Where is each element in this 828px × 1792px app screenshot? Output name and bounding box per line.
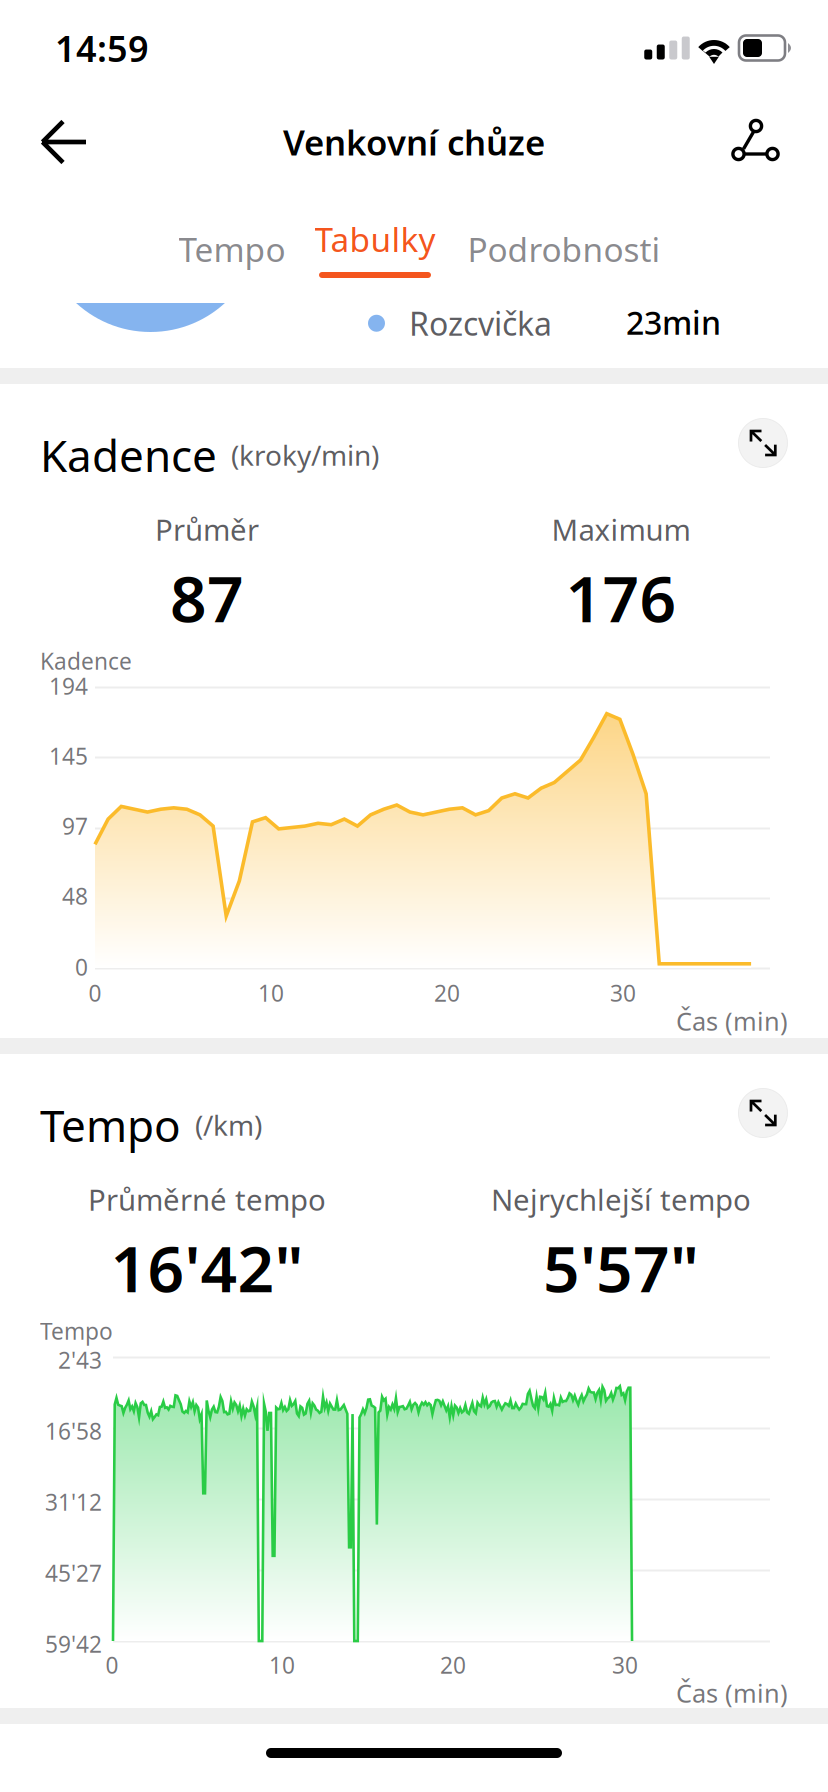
staticText: Průměr xyxy=(155,510,259,549)
staticText: (kroky/min) xyxy=(231,436,379,474)
staticText: Tempo xyxy=(40,1316,113,1346)
staticText: 10 xyxy=(269,1650,295,1680)
staticText: 176 xyxy=(565,555,676,640)
staticText: Tabulky xyxy=(314,217,435,261)
staticText: 87 xyxy=(170,555,244,640)
button[interactable]: Share xyxy=(706,96,806,188)
staticText: 145 xyxy=(49,741,88,771)
button[interactable]: Expand chart xyxy=(733,413,793,473)
staticText: Průměrné tempo xyxy=(88,1180,326,1219)
button[interactable]: Expand chart xyxy=(733,1083,793,1143)
button[interactable]: Tempo xyxy=(158,212,306,286)
staticText: 30 xyxy=(612,1650,638,1680)
button[interactable]: Back xyxy=(14,96,114,188)
staticText: 20 xyxy=(440,1650,466,1680)
staticText: 5'57" xyxy=(543,1225,699,1310)
staticText: Kadence xyxy=(40,426,217,484)
staticText: 14:59 xyxy=(55,24,149,72)
staticText: 30 xyxy=(610,978,636,1008)
staticText: Čas (min) xyxy=(676,1676,788,1710)
staticText: 20 xyxy=(434,978,460,1008)
staticText: 16'58 xyxy=(45,1416,102,1446)
staticText: 97 xyxy=(62,811,88,841)
staticText: 31'12 xyxy=(45,1487,102,1517)
staticText: 45'27 xyxy=(45,1558,102,1588)
staticText: 0 xyxy=(88,978,101,1008)
staticText: Kadence xyxy=(40,646,132,676)
staticText: Tempo xyxy=(40,1096,181,1154)
staticText: 0 xyxy=(75,952,88,982)
staticText: (/km) xyxy=(195,1106,262,1144)
staticText: Tempo xyxy=(178,227,285,271)
button[interactable]: Podrobnosti xyxy=(444,212,684,286)
staticText: 0 xyxy=(105,1650,118,1680)
staticText: 194 xyxy=(49,671,88,701)
staticText: 48 xyxy=(62,881,88,911)
staticText: Venkovní chůze xyxy=(283,119,545,165)
staticText: Podrobnosti xyxy=(467,227,660,271)
button[interactable]: Tabulky xyxy=(306,212,444,286)
staticText: 16'42" xyxy=(110,1225,303,1310)
staticText: 2'43 xyxy=(58,1345,102,1375)
staticText: Nejrychlejší tempo xyxy=(491,1180,751,1219)
staticText: 23min xyxy=(626,301,721,343)
staticText: Maximum xyxy=(551,510,690,549)
staticText: 59'42 xyxy=(45,1629,102,1659)
staticText: Čas (min) xyxy=(676,1004,788,1038)
staticText: 10 xyxy=(258,978,284,1008)
staticText: Rozcvička xyxy=(409,302,552,344)
